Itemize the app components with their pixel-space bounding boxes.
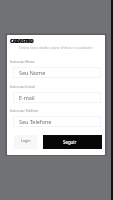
staticText: Insira seus dados para efetuar o cadastr… xyxy=(7,45,105,50)
staticText: CADASTRO xyxy=(10,38,33,44)
staticText: CADASTRO xyxy=(11,38,34,44)
staticText: CADASTRO xyxy=(10,38,33,44)
staticText: Insira seu Nome xyxy=(10,60,35,64)
button[interactable]: Seu Telefone xyxy=(13,116,101,127)
button[interactable]: E-mail xyxy=(13,92,101,103)
staticText: Seu Telefone xyxy=(19,118,52,125)
staticText: Seu Nome xyxy=(19,69,46,76)
staticText: Login xyxy=(21,138,31,143)
staticText: Insira seu E-mail xyxy=(10,85,35,89)
staticText: Seguir xyxy=(63,139,77,145)
staticText: Insira seu Telefone xyxy=(10,109,39,113)
staticText: E-mail xyxy=(19,94,35,101)
button[interactable]: Seguir xyxy=(43,135,102,149)
button[interactable]: Login xyxy=(14,135,37,149)
button[interactable]: Seu Nome xyxy=(13,67,101,78)
